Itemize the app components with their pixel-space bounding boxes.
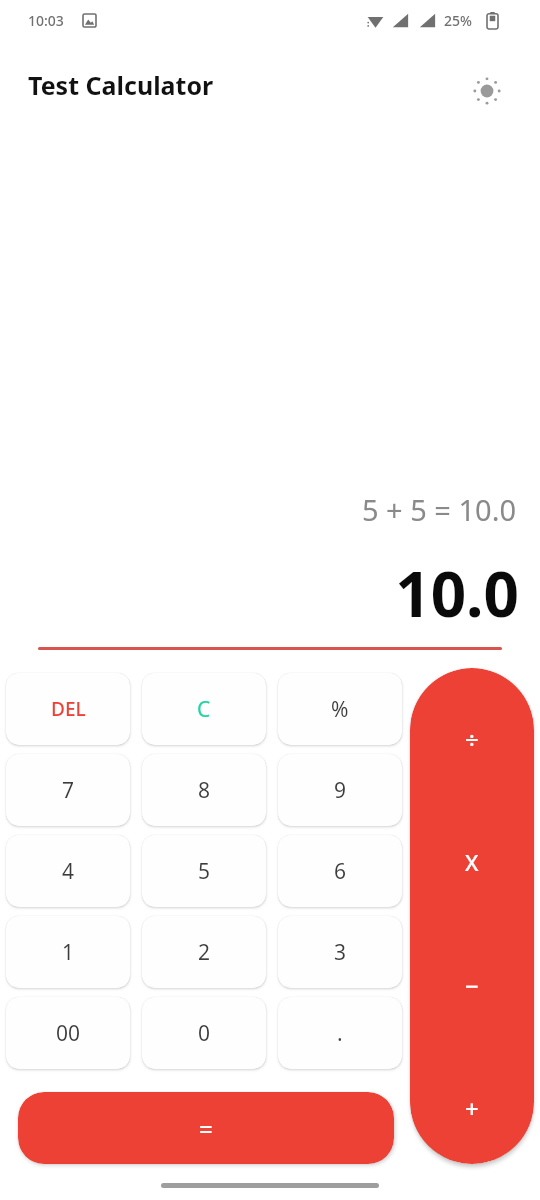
staticText: 1 [62, 938, 75, 967]
staticText: − [465, 969, 479, 1002]
button[interactable]: 1 [6, 916, 130, 988]
staticText: ÷ [465, 723, 479, 756]
staticText: = [199, 1112, 213, 1145]
button[interactable]: 9 [278, 754, 402, 826]
staticText: 5 + 5 = 10.0 [0, 490, 516, 529]
button[interactable]: 0 [142, 997, 266, 1069]
staticText: 9 [334, 776, 347, 805]
staticText: + [465, 1092, 479, 1125]
staticText: 8 [198, 776, 211, 805]
button[interactable]: Divide [410, 708, 534, 770]
button[interactable]: Multiply [410, 831, 534, 893]
button[interactable]: % [278, 673, 402, 745]
staticText: 10:03 [28, 11, 64, 30]
staticText: 5 [198, 857, 211, 886]
button[interactable]: = [18, 1092, 394, 1164]
staticText: 2 [198, 938, 211, 967]
staticText: 6 [334, 857, 347, 886]
button[interactable]: Add [410, 1077, 534, 1139]
staticText: 25% [444, 11, 472, 30]
staticText: X [465, 847, 479, 877]
button[interactable]: DEL [6, 673, 130, 745]
button[interactable]: 2 [142, 916, 266, 988]
staticText: 10.0 [0, 551, 519, 635]
staticText: 0 [198, 1019, 211, 1048]
staticText: . [337, 1019, 343, 1048]
button[interactable]: 4 [6, 835, 130, 907]
button[interactable]: 8 [142, 754, 266, 826]
button[interactable]: 5 [142, 835, 266, 907]
staticText: 00 [56, 1019, 81, 1048]
button[interactable]: Toggle theme brightness [462, 66, 512, 116]
button[interactable]: 6 [278, 835, 402, 907]
staticText: 4 [62, 857, 75, 886]
button[interactable]: Subtract [410, 954, 534, 1016]
staticText: 3 [334, 938, 347, 967]
staticText: DEL [51, 696, 86, 722]
button[interactable]: . [278, 997, 402, 1069]
staticText: Test Calculator [28, 68, 214, 102]
button[interactable]: 00 [6, 997, 130, 1069]
button[interactable]: 3 [278, 916, 402, 988]
staticText: % [331, 695, 349, 724]
staticText: 7 [62, 776, 75, 805]
button[interactable]: C [142, 673, 266, 745]
button[interactable]: 7 [6, 754, 130, 826]
staticText: C [197, 695, 211, 724]
